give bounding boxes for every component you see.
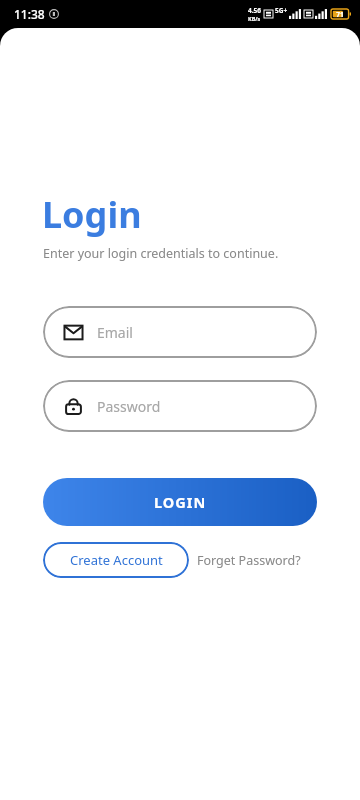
staticText: Forget Password? [197,552,301,569]
staticText: Create Account [70,551,163,569]
staticText: LOGIN [154,492,207,512]
staticText: Login [42,190,142,239]
staticText: KB/s [248,15,261,22]
button[interactable]: Password [43,380,317,432]
button[interactable]: LOGIN [43,478,317,526]
button[interactable]: Create Account [43,542,189,578]
button[interactable]: Email [43,306,317,358]
staticText: Email [97,323,133,342]
button[interactable]: Forget Password? [197,542,301,578]
staticText: 11:38 [14,6,45,22]
staticText: 5G+ [275,6,288,15]
staticText: Enter your login credentials to continue… [43,245,279,262]
staticText: 4.56 [248,6,261,15]
staticText: 71 [336,10,344,19]
staticText: Password [97,397,161,416]
